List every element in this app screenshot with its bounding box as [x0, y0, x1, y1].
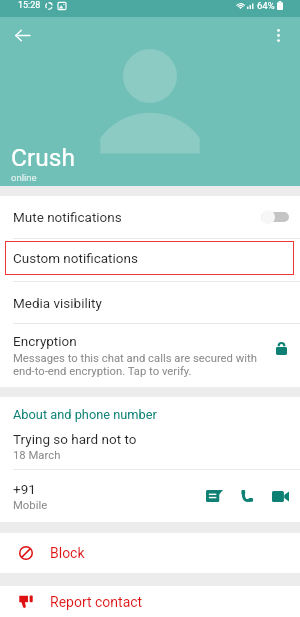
button[interactable]: Encryption — [0, 324, 300, 387]
button[interactable]: About and phone number — [0, 397, 300, 470]
staticText: Encryption — [13, 333, 77, 349]
button[interactable]: Back — [7, 20, 37, 50]
button[interactable]: Call — [232, 481, 262, 511]
staticText: Block — [50, 545, 85, 561]
staticText: Report contact — [50, 594, 143, 610]
button[interactable]: Mute notifications — [0, 196, 300, 239]
button[interactable]: Custom notifications — [0, 239, 300, 282]
button[interactable]: Report contact — [0, 586, 300, 617]
staticText: About and phone number — [13, 407, 157, 422]
staticText: online — [11, 172, 37, 183]
staticText: Mobile — [13, 499, 48, 512]
staticText: Custom notifications — [13, 250, 138, 266]
staticText: Mute notifications — [13, 209, 122, 225]
button[interactable]: Video call — [265, 481, 295, 511]
staticText: Messages to this chat and calls are secu… — [13, 352, 257, 365]
staticText: 15:28 — [18, 0, 41, 11]
button[interactable]: Message — [199, 481, 229, 511]
staticText: Media visibility — [13, 295, 102, 311]
button[interactable]: +91 — [0, 470, 300, 522]
button[interactable]: Block — [0, 533, 300, 573]
staticText: Trying so hard not to — [13, 431, 137, 447]
button[interactable]: Media visibility — [0, 282, 300, 324]
staticText: 18 March — [13, 449, 61, 462]
staticText: 64% — [257, 0, 275, 11]
staticText: end-to-end encryption. Tap to verify. — [13, 365, 192, 378]
button[interactable]: More options — [263, 20, 293, 50]
staticText: +91 — [13, 481, 36, 497]
staticText: Crush — [11, 143, 75, 172]
